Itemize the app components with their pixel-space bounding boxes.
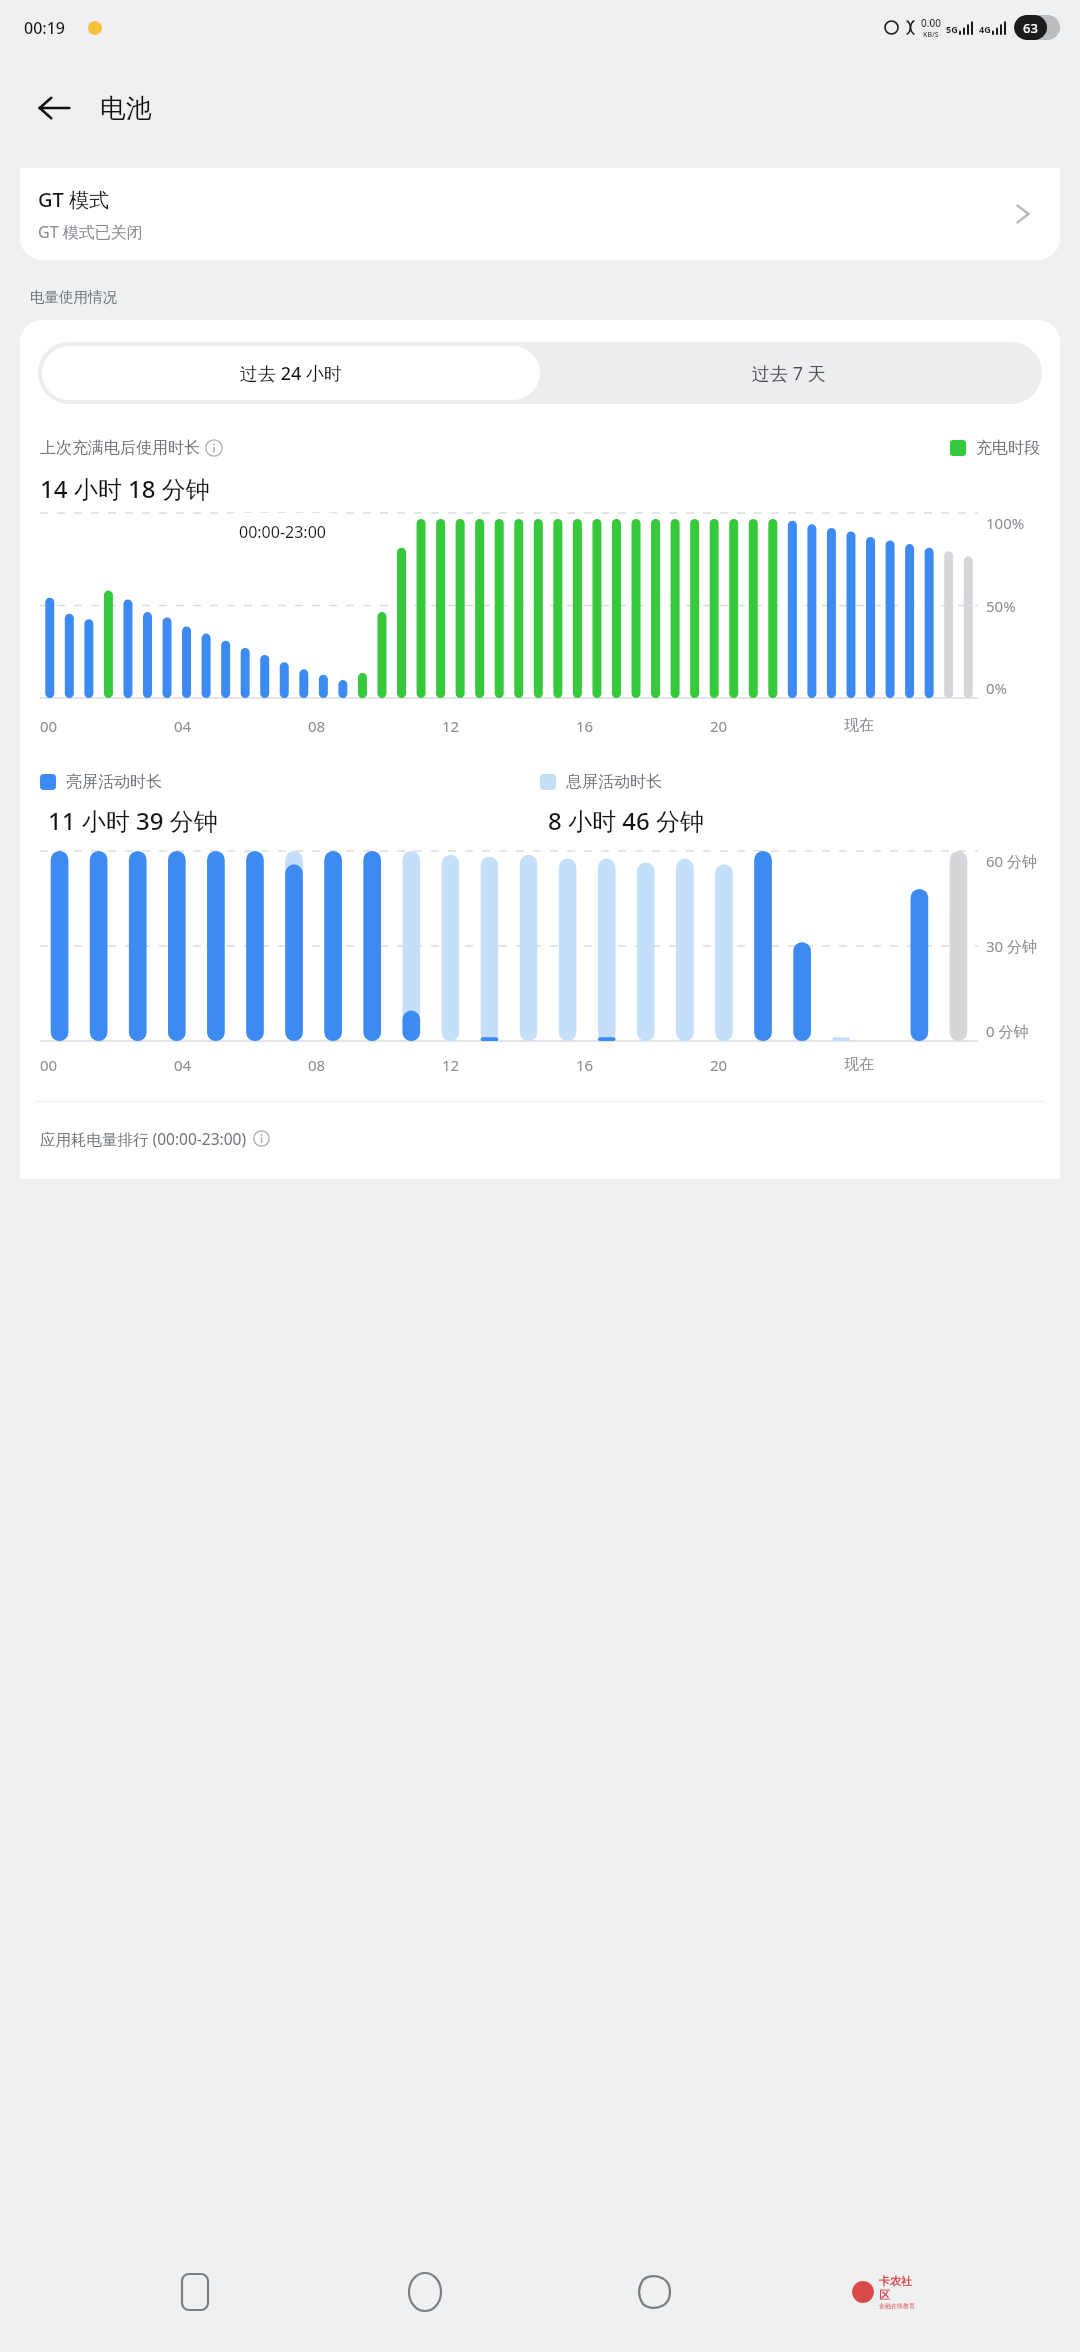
staticText: 8 小时 46 分钟: [548, 804, 704, 837]
staticText: 60 分钟: [986, 851, 1038, 871]
button[interactable]: Back: [620, 2257, 690, 2327]
staticText: 过去 7 天: [752, 361, 826, 386]
staticText: 12: [442, 1055, 460, 1075]
staticText: 04: [174, 716, 192, 736]
staticText: 5G: [946, 23, 958, 35]
staticText: GT 模式已关闭: [38, 221, 143, 243]
staticText: 08: [308, 1055, 326, 1075]
staticText: 0 分钟: [986, 1021, 1029, 1041]
staticText: 16: [576, 716, 594, 736]
staticText: 金融在线教育: [879, 2302, 915, 2310]
staticText: 00:19: [24, 17, 65, 39]
staticText: 08: [308, 716, 326, 736]
staticText: 4G: [979, 23, 991, 35]
staticText: GT 模式: [38, 186, 109, 213]
button[interactable]: GT 模式: [20, 168, 1060, 260]
staticText: 63: [1023, 19, 1038, 37]
staticText: 卡农社区: [879, 2274, 920, 2302]
staticText: 04: [174, 1055, 192, 1075]
staticText: 20: [710, 716, 728, 736]
staticText: 息屏活动时长: [566, 772, 662, 792]
staticText: 30 分钟: [986, 936, 1038, 956]
staticText: 电池: [100, 92, 152, 125]
staticText: 0.00: [921, 16, 941, 30]
staticText: 电量使用情况: [30, 288, 117, 306]
staticText: 16: [576, 1055, 594, 1075]
staticText: 应用耗电量排行 (00:00-23:00): [40, 1128, 247, 1149]
button[interactable]: 过去 24 小时: [42, 346, 540, 400]
staticText: 00: [40, 716, 58, 736]
staticText: 过去 24 小时: [240, 361, 342, 386]
staticText: 14 小时 18 分钟: [40, 472, 210, 505]
staticText: 20: [710, 1055, 728, 1075]
staticText: 100%: [986, 513, 1025, 533]
staticText: 0%: [986, 678, 1008, 698]
staticText: KB/S: [923, 30, 939, 40]
staticText: 50%: [986, 596, 1016, 616]
staticText: 现在: [844, 1055, 874, 1074]
button[interactable]: Home: [390, 2257, 460, 2327]
staticText: 00:00-23:00: [239, 521, 326, 543]
button[interactable]: Recents: [160, 2257, 230, 2327]
staticText: 现在: [844, 716, 874, 735]
staticText: 上次充满电后使用时长: [40, 438, 200, 458]
button[interactable]: 过去 7 天: [540, 346, 1038, 400]
staticText: 亮屏活动时长: [66, 772, 162, 792]
staticText: 12: [442, 716, 460, 736]
staticText: 11 小时 39 分钟: [48, 804, 218, 837]
staticText: 00: [40, 1055, 58, 1075]
staticText: 充电时段: [976, 438, 1040, 458]
button[interactable]: Back: [22, 76, 86, 140]
